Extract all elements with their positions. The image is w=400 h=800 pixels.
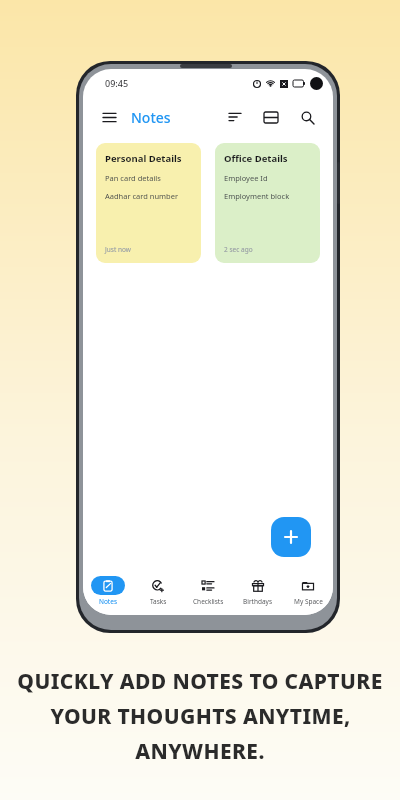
button[interactable]: Menu [97,105,121,129]
staticText: Employee Id [224,173,268,183]
button[interactable]: Add note [271,517,311,557]
button[interactable]: Search [295,105,319,129]
staticText: Employment block [224,191,290,201]
staticText: YOUR THOUGHTS ANYTIME, [50,702,351,731]
staticText: Aadhar card number [105,191,179,201]
staticText: 09:45 [105,77,129,89]
staticText: Just now [105,245,131,254]
button[interactable]: Notes [83,567,133,615]
button[interactable]: Office Details [215,143,320,263]
button[interactable]: My Space [283,567,333,615]
staticText: Birthdays [243,597,273,606]
button[interactable]: Checklists [183,567,233,615]
staticText: QUICKLY ADD NOTES TO CAPTURE [17,667,383,696]
button[interactable]: Birthdays [233,567,283,615]
button[interactable]: Personal Details [96,143,201,263]
button[interactable]: Sort [223,105,247,129]
staticText: Pan card details [105,173,161,183]
staticText: ANYWHERE. [135,737,265,766]
staticText: Tasks [150,597,167,606]
staticText: Checklists [193,597,224,606]
staticText: My Space [294,597,323,606]
staticText: Personal Details [105,152,182,165]
staticText: 2 sec ago [224,245,253,254]
staticText: Notes [99,597,117,606]
button[interactable]: View layout [259,105,283,129]
staticText: Office Details [224,152,288,165]
button[interactable]: Notes [131,108,171,127]
button[interactable]: Tasks [133,567,183,615]
